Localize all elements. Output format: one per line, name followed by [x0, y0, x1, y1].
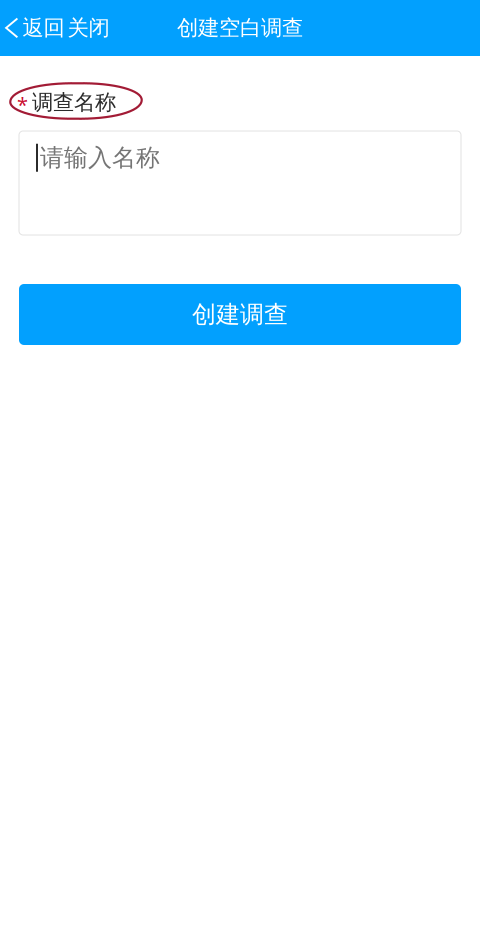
button[interactable]: 关闭: [64, 0, 112, 56]
staticText: *: [17, 91, 28, 118]
button[interactable]: 请输入名称: [19, 131, 461, 235]
staticText: 创建调查: [192, 300, 288, 329]
button[interactable]: 创建调查: [19, 284, 461, 345]
staticText: 请输入名称: [40, 143, 160, 172]
staticText: 调查名称: [32, 89, 116, 115]
staticText: 关闭: [67, 15, 109, 41]
button[interactable]: 返回: [0, 0, 64, 56]
staticText: 创建空白调查: [177, 15, 303, 41]
staticText: 返回: [22, 15, 64, 41]
